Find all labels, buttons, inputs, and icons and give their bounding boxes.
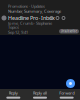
staticText: Topics: [8, 24, 19, 30]
button[interactable]: Star: [50, 16, 53, 19]
staticText: Sep 12, 9:41: [8, 29, 28, 35]
staticText: Reply: [9, 90, 18, 96]
staticText: Forward: [59, 90, 74, 96]
button[interactable]: Reply all: [27, 89, 53, 100]
button[interactable]: Reply: [0, 89, 27, 100]
button[interactable]: Reply: [56, 16, 59, 19]
staticText: Reply all: [33, 90, 47, 96]
button[interactable]: Compose: [65, 78, 76, 89]
button[interactable]: More: [62, 16, 65, 19]
button[interactable]: Unsubscribe: [59, 29, 79, 33]
staticText: to me, Crumb · Stephanie: [8, 20, 52, 26]
staticText: Unsubscribe: [60, 29, 77, 33]
staticText: Promotions · Updates: [8, 3, 45, 9]
staticText: Number, Summary, Coverage: [8, 8, 61, 14]
button[interactable]: Forward: [53, 89, 80, 100]
staticText: Headline Pro · Inbox: [8, 14, 55, 22]
